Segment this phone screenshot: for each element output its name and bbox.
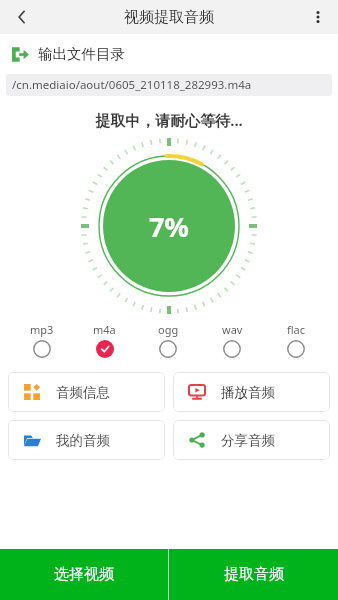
button[interactable]: More options	[298, 0, 338, 34]
button[interactable]: 播放音频	[173, 372, 330, 412]
staticText: m4a	[93, 322, 116, 337]
staticText: 我的音频	[56, 432, 110, 449]
staticText: wav	[222, 322, 243, 337]
button[interactable]: 我的音频	[8, 420, 165, 460]
staticText: 视频提取音频	[124, 8, 214, 27]
staticText: 播放音频	[221, 384, 275, 401]
button[interactable]: 分享音频	[173, 420, 330, 460]
button[interactable]: /cn.mediaio/aout/0605_210118_282993.m4a	[6, 74, 332, 96]
button[interactable]: mp3	[10, 320, 73, 360]
staticText: 分享音频	[221, 432, 275, 449]
button[interactable]: wav	[200, 320, 264, 360]
button[interactable]: m4a	[73, 320, 136, 360]
button[interactable]: flac	[264, 320, 328, 360]
staticText: ogg	[158, 322, 179, 337]
button[interactable]: 提取音频	[169, 549, 338, 600]
staticText: 提取中，请耐心等待...	[0, 110, 338, 130]
button[interactable]: 音频信息	[8, 372, 165, 412]
button[interactable]: 选择视频	[0, 549, 168, 600]
staticText: 选择视频	[54, 565, 114, 584]
staticText: 音频信息	[56, 384, 110, 401]
staticText: 7%	[149, 208, 189, 245]
staticText: mp3	[30, 322, 54, 337]
staticText: 输出文件目录	[38, 45, 125, 63]
staticText: /cn.mediaio/aout/0605_210118_282993.m4a	[12, 77, 252, 93]
button[interactable]: Back	[0, 0, 44, 34]
staticText: 提取音频	[224, 565, 284, 584]
staticText: flac	[287, 322, 306, 337]
button[interactable]: ogg	[136, 320, 200, 360]
